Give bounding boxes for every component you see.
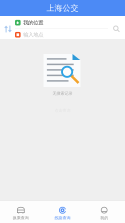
button[interactable]: 换乘查询 [0,201,42,223]
button[interactable]: Swap origin and destination [1,16,15,39]
button[interactable]: 输入地点 [15,29,108,40]
button[interactable]: 我的 [83,201,125,223]
staticText: 上海公交 [46,3,78,13]
staticText: 我的 [100,215,108,220]
staticText: 线路查询 [54,215,70,220]
staticText: 换乘查询 [13,215,29,220]
staticText: 无搜索记录 [52,91,72,96]
button[interactable]: Search [108,16,125,39]
button[interactable]: 线路查询 [42,201,83,223]
staticText: 我的位置 [23,19,43,26]
button[interactable]: 我的位置 [15,17,108,28]
staticText: 输入地点 [23,31,43,38]
